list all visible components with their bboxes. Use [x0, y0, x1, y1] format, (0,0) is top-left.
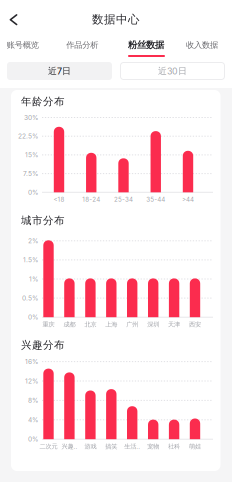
staticText: 北京	[84, 320, 96, 328]
staticText: 35-44	[146, 196, 165, 203]
staticText: 18-24	[82, 196, 100, 203]
staticText: 4%	[28, 416, 38, 424]
staticText: 年龄分布	[21, 95, 65, 108]
staticText: >44	[182, 196, 194, 203]
staticText: 兴趣..	[61, 442, 77, 450]
staticText: 1.5%	[23, 256, 38, 264]
staticText: 宠物	[147, 442, 159, 450]
button[interactable]: 近30日	[120, 62, 225, 80]
staticText: 0%	[28, 188, 38, 196]
staticText: 兴趣分布	[21, 338, 65, 352]
button[interactable]: 账号概览	[0, 34, 49, 56]
staticText: 深圳	[147, 320, 159, 328]
staticText: 城市分布	[21, 214, 65, 227]
staticText: 近7日	[48, 65, 71, 77]
staticText: 成都	[63, 320, 75, 328]
staticText: 天津	[168, 320, 180, 328]
staticText: 西安	[189, 320, 201, 328]
staticText: 1%	[29, 275, 38, 283]
staticText: 2%	[28, 237, 38, 245]
staticText: 上海	[105, 320, 117, 328]
staticText: 16%	[25, 358, 38, 366]
staticText: 0%	[28, 313, 38, 321]
button[interactable]: 作品分析	[56, 34, 108, 56]
staticText: 7.5%	[23, 170, 38, 178]
staticText: 0.5%	[22, 294, 38, 302]
staticText: 12%	[25, 377, 38, 385]
staticText: 社科	[168, 442, 180, 450]
staticText: 萌娃	[189, 442, 201, 450]
staticText: 0%	[28, 435, 38, 443]
staticText: 搞笑	[105, 442, 117, 450]
staticText: 25-34	[114, 196, 133, 203]
button[interactable]: 收入数据	[176, 34, 228, 56]
staticText: 重庆	[42, 320, 54, 328]
staticText: <18	[53, 196, 64, 203]
staticText: 粉丝数据	[128, 39, 164, 51]
staticText: 数据中心	[92, 12, 140, 27]
staticText: 收入数据	[186, 40, 218, 50]
staticText: 游戏	[84, 442, 96, 450]
staticText: 30%	[24, 113, 38, 121]
staticText: 22.5%	[18, 132, 38, 140]
staticText: 15%	[25, 151, 38, 159]
staticText: 作品分析	[66, 40, 98, 50]
staticText: 近30日	[158, 65, 187, 77]
button[interactable]: 粉丝数据	[120, 34, 172, 56]
button[interactable]: 近7日	[7, 62, 112, 80]
staticText: 二次元	[39, 442, 57, 450]
staticText: 8%	[28, 396, 38, 404]
button[interactable]: Back	[0, 0, 28, 40]
staticText: 广州	[126, 320, 138, 328]
staticText: 生活..	[124, 442, 140, 450]
staticText: 账号概览	[7, 40, 39, 50]
